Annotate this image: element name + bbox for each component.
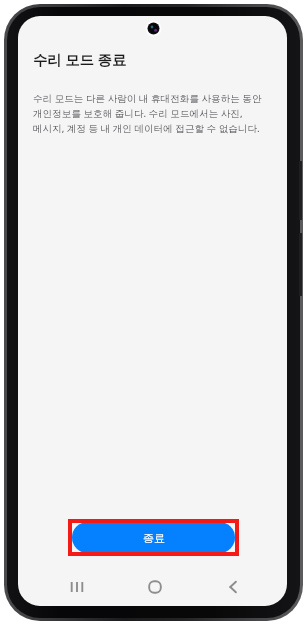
- staticText: 종료: [143, 531, 165, 545]
- staticText: 수리 모드 종료: [33, 50, 127, 70]
- button[interactable]: 종료: [72, 522, 235, 553]
- staticText: 수리 모드는 다른 사람이 내 휴대전화를 사용하는 동안 개인정보를 보호해 …: [33, 92, 262, 135]
- button[interactable]: Home: [133, 565, 177, 606]
- button[interactable]: Back: [210, 565, 254, 606]
- button[interactable]: Recent apps: [55, 565, 99, 606]
